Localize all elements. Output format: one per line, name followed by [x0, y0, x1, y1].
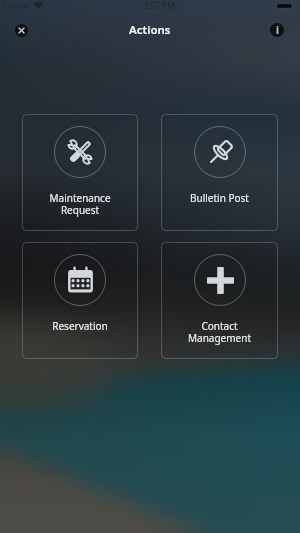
staticText: Carrier	[3, 1, 30, 12]
staticText: Contact Management	[161, 319, 278, 345]
staticText: 3:57 PM	[143, 0, 176, 12]
staticText: Maintenance Request	[22, 191, 138, 217]
button[interactable]: Bulletin Post	[161, 114, 278, 231]
staticText: Reservation	[22, 319, 138, 333]
staticText: i	[276, 23, 279, 37]
staticText: Actions	[129, 22, 171, 38]
button[interactable]: Reservation	[22, 242, 138, 359]
button[interactable]: Contact Management	[161, 242, 278, 359]
staticText: Bulletin Post	[161, 191, 278, 205]
button[interactable]: Close	[7, 16, 35, 44]
button[interactable]: Info	[263, 16, 291, 44]
button[interactable]: Maintenance Request	[22, 114, 138, 231]
